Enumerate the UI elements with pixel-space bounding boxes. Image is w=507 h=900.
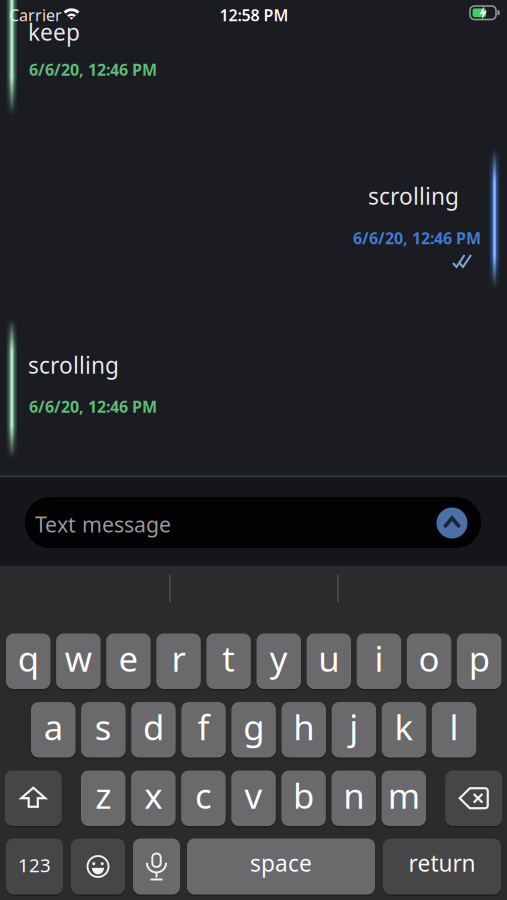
button[interactable]: return	[383, 838, 501, 894]
staticText: keep	[28, 17, 80, 47]
staticText: l	[450, 704, 459, 750]
staticText: 6/6/20, 12:46 PM	[29, 396, 157, 417]
staticText: r	[172, 635, 186, 681]
staticText: Text message	[35, 510, 171, 538]
button[interactable]: q	[6, 633, 50, 689]
button[interactable]: a	[31, 702, 75, 757]
staticText: v	[244, 772, 262, 818]
staticText: p	[469, 635, 490, 681]
button[interactable]: e	[106, 633, 151, 689]
staticText: q	[18, 635, 39, 681]
button[interactable]: s	[81, 702, 126, 757]
staticText: k	[394, 704, 413, 750]
staticText: x	[144, 772, 162, 818]
button[interactable]: u	[307, 633, 351, 689]
button[interactable]: p	[457, 633, 501, 689]
staticText: h	[293, 704, 314, 750]
button[interactable]: h	[281, 702, 326, 757]
staticText: e	[118, 635, 138, 681]
staticText: s	[95, 704, 112, 750]
staticText: space	[250, 848, 312, 878]
staticText: g	[243, 704, 264, 750]
button[interactable]: t	[206, 633, 251, 689]
button[interactable]: x	[131, 770, 176, 826]
button[interactable]: v	[231, 770, 276, 826]
button[interactable]: g	[231, 702, 276, 757]
staticText: n	[343, 772, 364, 818]
staticText: scrolling	[368, 181, 459, 211]
button[interactable]: k	[382, 702, 426, 757]
staticText: m	[388, 772, 420, 818]
staticText: 6/6/20, 12:46 PM	[353, 227, 481, 249]
staticText: u	[318, 635, 339, 681]
button[interactable]: n	[331, 770, 376, 826]
staticText: w	[65, 635, 92, 681]
staticText: y	[270, 635, 288, 681]
staticText: t	[222, 635, 235, 681]
button[interactable]: f	[181, 702, 226, 757]
button[interactable]: Text message	[25, 497, 481, 548]
button[interactable]: y	[256, 633, 301, 689]
button[interactable]: Delete	[445, 770, 502, 826]
staticText: j	[349, 704, 358, 750]
staticText: 123	[18, 853, 51, 877]
button[interactable]: z	[81, 770, 125, 826]
staticText: 6/6/20, 12:46 PM	[29, 59, 157, 80]
staticText: f	[198, 704, 210, 750]
staticText: b	[293, 772, 314, 818]
staticText: c	[195, 772, 212, 818]
staticText: i	[374, 635, 383, 681]
button[interactable]: Shift	[5, 770, 62, 826]
button[interactable]: w	[56, 633, 101, 689]
button[interactable]: 123	[6, 838, 63, 894]
button[interactable]: b	[281, 770, 326, 826]
button[interactable]: o	[407, 633, 451, 689]
button[interactable]: m	[382, 770, 426, 826]
staticText: d	[143, 704, 164, 750]
staticText: 12:58 PM	[219, 4, 288, 26]
button[interactable]: d	[131, 702, 176, 757]
button[interactable]: Send	[436, 507, 467, 538]
staticText: Carrier	[9, 4, 62, 26]
button[interactable]: Dictation	[133, 838, 180, 894]
staticText: return	[408, 848, 475, 878]
button[interactable]: space	[187, 838, 375, 894]
button[interactable]: Emoji	[71, 838, 125, 894]
button[interactable]: r	[156, 633, 201, 689]
button[interactable]: i	[357, 633, 401, 689]
staticText: a	[44, 704, 63, 750]
staticText: o	[419, 635, 440, 681]
staticText: scrolling	[28, 350, 119, 380]
button[interactable]: j	[332, 702, 376, 757]
staticText: z	[95, 772, 111, 818]
button[interactable]: l	[432, 702, 476, 757]
button[interactable]: c	[181, 770, 226, 826]
